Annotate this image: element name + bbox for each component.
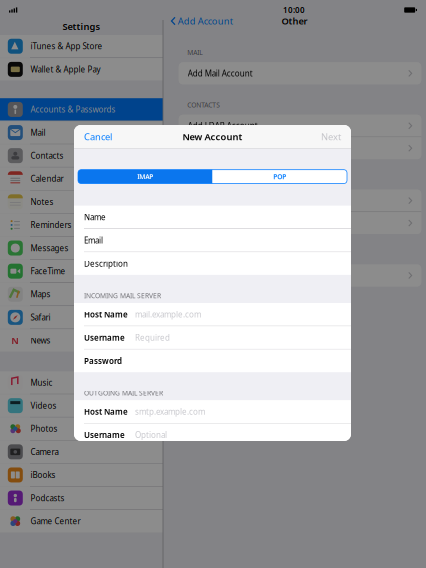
staticText: Add Account <box>178 15 233 27</box>
button[interactable]: Add Other Account <box>179 264 421 286</box>
staticText: Cancel <box>84 130 112 143</box>
button[interactable]: Add Subscribed Calendar <box>179 212 421 234</box>
button[interactable]: Mail <box>0 121 163 144</box>
staticText: Podcasts <box>30 493 64 503</box>
staticText: Mail <box>30 127 45 138</box>
staticText: Optional <box>135 430 167 440</box>
staticText: Calendar <box>30 173 63 184</box>
staticText: Safari <box>30 312 50 323</box>
button[interactable]: Next <box>311 125 351 149</box>
staticText: Email <box>84 235 103 246</box>
staticText: Username <box>84 430 125 440</box>
staticText: Maps <box>30 289 50 299</box>
staticText: Host Name <box>84 406 128 417</box>
button[interactable]: Contacts <box>0 144 163 167</box>
button[interactable]: Podcasts <box>0 487 163 509</box>
button[interactable]: Cancel <box>74 125 122 149</box>
button[interactable]: N <box>0 329 163 352</box>
staticText: Notes <box>30 196 53 207</box>
button[interactable]: Photos <box>0 417 163 440</box>
button[interactable]: POP <box>212 170 347 183</box>
staticText: Accounts & Passwords <box>30 104 115 115</box>
staticText: smtp.example.com <box>135 406 205 417</box>
button[interactable]: Notes <box>0 191 163 213</box>
button[interactable]: Videos <box>0 394 163 417</box>
staticText: 10:00 <box>283 5 305 15</box>
staticText: OTHER <box>187 250 209 259</box>
button[interactable]: Add Account <box>163 15 239 27</box>
staticText: INCOMING MAIL SERVER <box>84 291 161 300</box>
staticText: FaceTime <box>30 266 65 276</box>
button[interactable]: Accounts & Passwords <box>0 98 163 121</box>
staticText: Contacts <box>30 150 63 161</box>
staticText: POP <box>273 172 286 181</box>
staticText: New Account <box>182 130 242 143</box>
staticText: IMAP <box>137 172 153 181</box>
staticText: Wallet & Apple Pay <box>30 64 100 75</box>
staticText: Next <box>321 130 341 143</box>
button[interactable]: Add CalDAV Account <box>179 190 421 212</box>
staticText: CONTACTS <box>187 100 220 109</box>
staticText: mail.example.com <box>135 309 201 320</box>
button[interactable]: iBooks <box>0 464 163 486</box>
staticText: Name <box>84 212 106 222</box>
staticText: Reminders <box>30 220 71 230</box>
staticText: Add Other Account <box>188 270 260 281</box>
button[interactable]: Calendar <box>0 167 163 190</box>
staticText: MAIL <box>187 48 202 57</box>
button[interactable]: Music <box>0 371 163 394</box>
button[interactable]: Safari <box>0 306 163 329</box>
staticText: Photos <box>30 423 57 434</box>
staticText: Videos <box>30 400 56 411</box>
button[interactable]: Game Center <box>0 510 163 532</box>
staticText: iTunes & App Store <box>30 41 102 51</box>
staticText: OUTGOING MAIL SERVER <box>84 388 163 397</box>
staticText: CALENDARS <box>187 175 224 184</box>
staticText: Required <box>135 332 170 343</box>
button[interactable]: Maps <box>0 283 163 305</box>
staticText: Messages <box>30 243 68 253</box>
button[interactable]: Add CardDAV Account <box>179 137 421 159</box>
button[interactable]: FaceTime <box>0 260 163 282</box>
button[interactable]: iTunes & App Store <box>0 35 163 57</box>
staticText: News <box>30 335 50 346</box>
staticText: Password <box>84 356 122 366</box>
button[interactable]: Camera <box>0 441 163 463</box>
button[interactable]: Add LDAP Account <box>179 115 421 137</box>
staticText: Add CardDAV Account <box>188 143 271 153</box>
staticText: Game Center <box>30 516 80 526</box>
staticText: Add Mail Account <box>188 68 253 79</box>
staticText: Description <box>84 258 128 269</box>
staticText: Username <box>84 332 125 343</box>
button[interactable]: Wallet & Apple Pay <box>0 58 163 81</box>
staticText: Host Name <box>84 309 128 320</box>
staticText: Settings <box>62 20 100 33</box>
button[interactable]: Reminders <box>0 214 163 236</box>
staticText: Other <box>281 15 307 27</box>
staticText: Camera <box>30 446 58 457</box>
staticText: Add LDAP Account <box>188 120 258 131</box>
staticText: N <box>11 334 19 347</box>
button[interactable]: Messages <box>0 237 163 259</box>
staticText: iBooks <box>30 470 55 480</box>
staticText: Music <box>30 377 52 388</box>
button[interactable]: Add Mail Account <box>179 62 421 84</box>
button[interactable]: IMAP <box>78 170 212 183</box>
